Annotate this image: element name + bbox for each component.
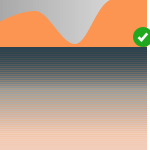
button[interactable]: Verified xyxy=(133,27,150,47)
